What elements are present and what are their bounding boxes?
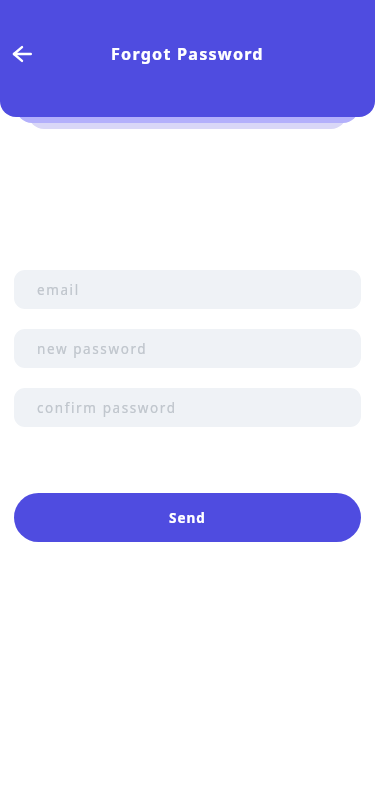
staticText: new password	[37, 340, 148, 358]
button[interactable]: new password	[14, 329, 361, 368]
staticText: email	[37, 281, 80, 299]
button[interactable]: email	[14, 270, 361, 309]
staticText: Send	[169, 509, 206, 527]
button[interactable]: Send	[14, 493, 361, 542]
staticText: confirm password	[37, 399, 177, 417]
staticText: Forgot Password	[111, 43, 264, 65]
button[interactable]: confirm password	[14, 388, 361, 427]
button[interactable]: Back	[6, 38, 38, 70]
